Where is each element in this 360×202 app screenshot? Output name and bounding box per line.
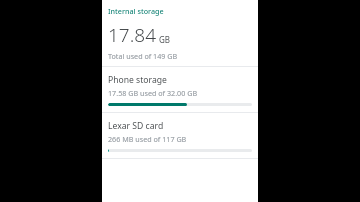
staticText: Lexar SD card <box>108 120 164 132</box>
staticText: 266 MB used of 117 GB <box>108 134 187 144</box>
staticText: 17.58 GB used of 32.00 GB <box>108 88 198 98</box>
button[interactable]: Lexar SD card <box>102 113 258 158</box>
staticText: Phone storage <box>108 74 167 86</box>
staticText: 17.84 <box>108 22 157 48</box>
button[interactable]: Phone storage <box>102 67 258 112</box>
staticText: Total used of 149 GB <box>108 51 178 61</box>
button[interactable]: Internal storage <box>102 0 258 66</box>
staticText: Internal storage <box>108 6 164 16</box>
staticText: GB <box>159 34 171 45</box>
